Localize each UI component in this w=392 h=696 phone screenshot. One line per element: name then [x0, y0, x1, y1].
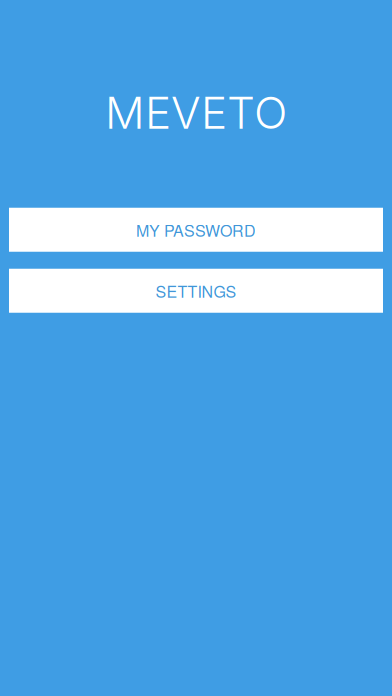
staticText: SETTINGS: [155, 279, 236, 302]
button[interactable]: MY PASSWORD: [9, 208, 383, 252]
staticText: MY PASSWORD: [136, 218, 256, 241]
staticText: MEVETO: [105, 86, 287, 139]
button[interactable]: SETTINGS: [9, 269, 383, 313]
